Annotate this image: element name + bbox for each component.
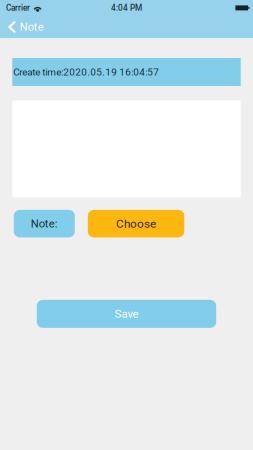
button[interactable]: Choose bbox=[88, 210, 184, 237]
staticText: Note bbox=[20, 20, 44, 33]
staticText: 4:04 PM bbox=[111, 3, 142, 13]
staticText: Save bbox=[114, 307, 138, 321]
button[interactable]: Save bbox=[37, 300, 216, 328]
staticText: Choose bbox=[116, 217, 156, 231]
staticText: Create time:2020.05.19 16:04:57 bbox=[13, 66, 159, 78]
button[interactable]: Note: bbox=[14, 210, 75, 237]
button[interactable]: Note bbox=[0, 16, 52, 37]
staticText: Carrier bbox=[6, 3, 30, 13]
staticText: Note: bbox=[31, 217, 58, 230]
